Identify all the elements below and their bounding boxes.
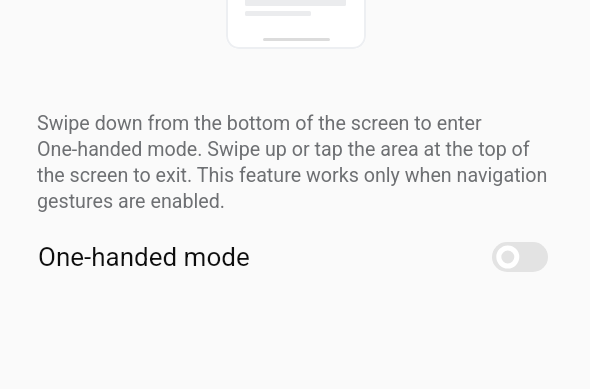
staticText: gestures are enabled. [37, 190, 226, 213]
staticText: One-handed mode [38, 242, 250, 272]
staticText: Swipe down from the bottom of the screen… [37, 112, 482, 135]
other: One-handed mode toggle [492, 242, 548, 272]
staticText: One-handed mode. Swipe up or tap the are… [37, 138, 530, 161]
staticText: the screen to exit. This feature works o… [37, 164, 548, 187]
button[interactable]: One-handed mode [0, 227, 590, 287]
